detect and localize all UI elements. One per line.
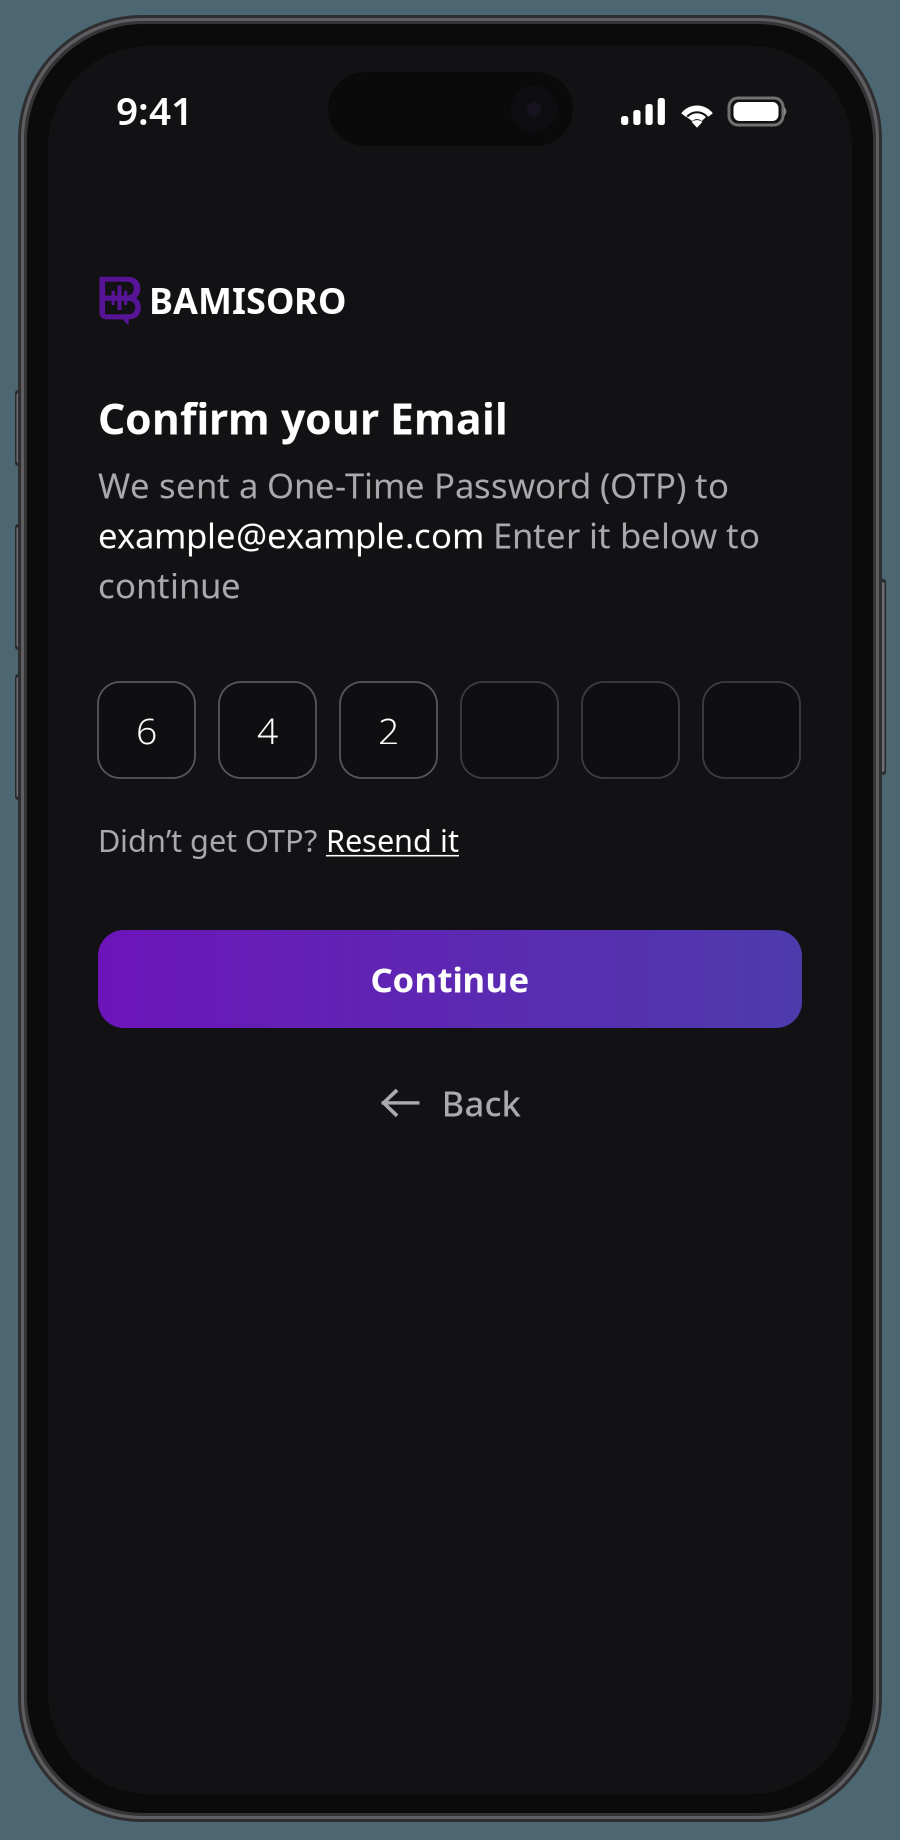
button[interactable]: OTP digit 6 [98,682,195,778]
staticText: Resend it [326,820,459,860]
staticText: Back [441,1080,520,1126]
button[interactable]: Continue [98,930,802,1028]
staticText: Didn’t get OTP? [98,820,317,860]
staticText: Enter it below to [484,512,760,558]
button[interactable]: OTP digit 2 [340,682,437,778]
button[interactable]: Empty OTP digit [582,682,679,778]
button[interactable]: Empty OTP digit [461,682,558,778]
staticText: Continue [370,956,529,1002]
button[interactable]: Empty OTP digit [703,682,800,778]
button[interactable]: OTP digit 4 [219,682,316,778]
staticText: 6 [136,705,157,755]
staticText: example@example.com [98,512,484,558]
staticText: continue [98,562,241,608]
button[interactable]: Back [98,1074,802,1132]
staticText: 4 [257,705,278,755]
staticText: Confirm your Email [98,390,508,446]
staticText: 2 [378,705,399,755]
staticText: We sent a One-Time Password (OTP) to [98,462,729,508]
staticText: BAMISORO [149,276,346,324]
staticText: 9:41 [116,84,193,136]
button[interactable]: Resend it [326,820,459,860]
